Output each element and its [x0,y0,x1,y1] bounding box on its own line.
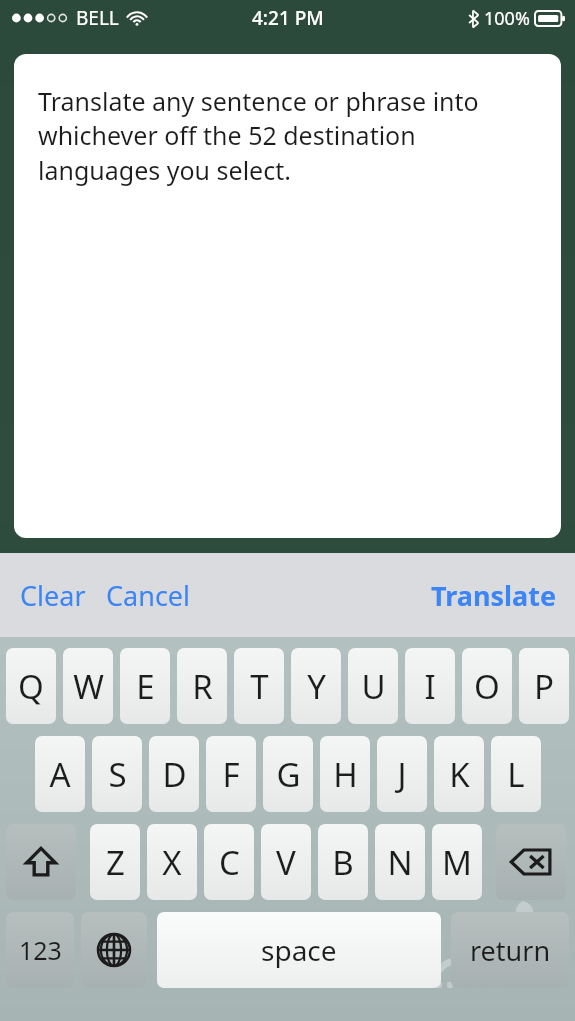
button[interactable]: R [177,648,227,724]
button[interactable]: Q [6,648,56,724]
staticText: Clear [20,577,86,614]
staticText: Z [106,840,125,885]
staticText: I [424,664,436,709]
staticText: N [387,840,413,885]
staticText: return [470,932,551,969]
staticText: J [397,752,407,797]
button[interactable]: M [432,824,482,900]
button[interactable]: 123 [6,912,74,988]
staticText: G [276,752,301,797]
staticText: H [333,752,358,797]
staticText: A [49,752,71,797]
staticText: Translate [431,577,557,614]
staticText: F [222,752,240,797]
staticText: V [276,840,296,885]
button[interactable]: D [149,736,199,812]
staticText: W [73,664,104,709]
staticText: K [449,752,470,797]
button[interactable]: Change keyboard language [81,912,147,988]
staticText: R [192,664,213,709]
button[interactable]: C [204,824,254,900]
button[interactable]: B [318,824,368,900]
button[interactable]: Clear [10,569,96,622]
button[interactable]: Z [90,824,140,900]
button[interactable]: return [451,912,569,988]
button[interactable]: A [35,736,85,812]
button[interactable]: O [462,648,512,724]
button[interactable]: V [261,824,311,900]
button[interactable]: K [434,736,484,812]
button[interactable]: X [147,824,197,900]
staticText: 4:21 PM [252,5,324,31]
staticText: 100% [484,6,530,31]
button[interactable]: Y [291,648,341,724]
staticText: Y [307,664,326,709]
button[interactable]: Shift [6,824,76,900]
button[interactable]: Backspace [496,824,566,900]
staticText: U [361,664,386,709]
staticText: O [474,664,500,709]
button[interactable]: T [234,648,284,724]
button[interactable]: F [206,736,256,812]
staticText: space [261,931,337,969]
button[interactable]: Translate any sentence or phrase into wh… [14,54,561,538]
button[interactable]: P [519,648,569,724]
staticText: Translate any sentence or phrase into wh… [38,84,541,188]
staticText: T [250,664,269,709]
button[interactable]: L [491,736,541,812]
button[interactable]: H [320,736,370,812]
button[interactable]: J [377,736,427,812]
button[interactable]: space [157,912,441,988]
staticText: B [332,840,354,885]
staticText: 123 [19,933,62,967]
staticText: M [442,840,472,885]
staticText: S [108,752,127,797]
staticText: L [507,752,525,797]
button[interactable]: Cancel [96,569,201,622]
staticText: C [219,840,240,885]
staticText: BELL [76,5,119,31]
staticText: Cancel [106,577,191,614]
button[interactable]: W [63,648,113,724]
button[interactable]: G [263,736,313,812]
button[interactable]: N [375,824,425,900]
staticText: X [162,840,182,885]
staticText: P [534,664,554,709]
staticText: D [162,752,187,797]
staticText: E [136,664,155,709]
button[interactable]: S [92,736,142,812]
button[interactable]: E [120,648,170,724]
staticText: Q [18,664,44,709]
button[interactable]: Translate [423,569,565,622]
button[interactable]: U [348,648,398,724]
button[interactable]: I [405,648,455,724]
